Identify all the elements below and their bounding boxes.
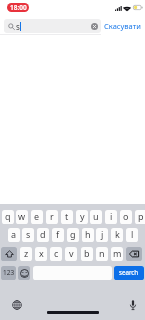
staticText: q [5,210,11,222]
staticText: 18:00 [10,3,27,12]
button[interactable]: n [96,247,108,261]
button[interactable]: a [8,228,20,242]
staticText: y [80,210,85,222]
button[interactable]: s [22,228,34,242]
staticText: g [70,228,76,240]
button[interactable]: b [81,247,93,261]
staticText: s [26,228,31,240]
staticText: Скасувати [104,21,141,31]
button[interactable]: p [135,210,145,224]
button[interactable]: j [96,228,108,242]
staticText: p [138,210,144,222]
staticText: x [39,247,44,259]
button[interactable]: Emoji [18,266,30,280]
button[interactable]: o [120,210,132,224]
staticText: d [40,228,46,240]
button[interactable]: f [52,228,64,242]
button[interactable]: s [4,19,101,33]
button[interactable]: d [37,228,49,242]
staticText: a [11,228,17,240]
staticText: b [84,247,90,259]
staticText: u [93,210,99,222]
button[interactable]: Next keyboard [11,299,23,311]
button[interactable]: c [50,247,62,261]
button[interactable]: Backspace [126,247,142,261]
staticText: c [54,247,59,259]
staticText: t [65,210,69,222]
staticText: j [101,228,104,240]
button[interactable]: g [67,228,79,242]
staticText: o [123,210,129,222]
staticText: h [85,228,91,240]
button[interactable]: q [2,210,14,224]
button[interactable]: h [82,228,94,242]
staticText: s [16,21,20,32]
button[interactable]: e [31,210,43,224]
button[interactable]: Shift [1,247,17,261]
staticText: z [24,247,29,259]
staticText: v [69,247,74,259]
staticText: f [56,228,60,240]
button[interactable]: r [46,210,58,224]
staticText: 123 [3,268,15,277]
staticText: e [34,210,40,222]
button[interactable]: Clear text [91,23,98,30]
staticText: r [50,210,54,222]
button[interactable]: x [35,247,47,261]
button[interactable]: search [114,266,144,280]
button[interactable]: w [16,210,28,224]
button[interactable]: i [105,210,117,224]
button[interactable]: Скасувати [104,21,141,31]
staticText: i [110,210,113,222]
staticText: n [99,247,105,259]
button[interactable]: Dictation [127,299,139,311]
button[interactable]: z [20,247,32,261]
button[interactable]: m [111,247,123,261]
button[interactable]: k [111,228,123,242]
button[interactable]: v [65,247,77,261]
button[interactable]: u [90,210,102,224]
button[interactable]: t [61,210,73,224]
button[interactable]: l [126,228,138,242]
button[interactable]: y [76,210,88,224]
staticText: k [115,228,120,240]
staticText: search [119,268,139,276]
staticText: w [18,210,26,222]
button[interactable]: 123 [1,266,16,280]
staticText: m [113,247,122,259]
staticText: l [131,228,134,240]
